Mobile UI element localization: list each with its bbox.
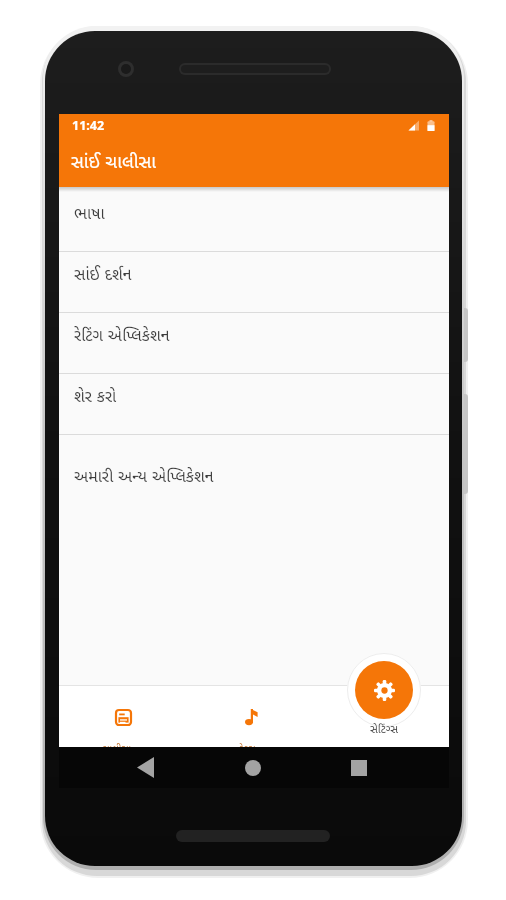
button[interactable]: ભાષા — [59, 187, 449, 252]
staticText: સાંઈ દર્શન — [74, 263, 132, 285]
staticText: ભાષા — [74, 202, 105, 224]
button[interactable] — [229, 693, 277, 741]
staticText: ટ્રેક્સ — [239, 741, 256, 755]
button[interactable] — [341, 755, 377, 780]
staticText: સાંઈ ચાલીસા — [71, 149, 157, 174]
staticText: અમારી અન્ય એપ્લિકેશન — [74, 465, 214, 487]
button[interactable]: અમારી અન્ય એપ્લિકેશન — [59, 435, 449, 496]
button[interactable]: સાંઈ દર્શન — [59, 252, 449, 313]
staticText: શેર કરો — [74, 385, 117, 407]
button[interactable] — [235, 755, 271, 780]
staticText: રેટિંગ એપ્લિકેશન — [74, 324, 170, 346]
button[interactable] — [99, 693, 147, 741]
button[interactable]: રેટિંગ એપ્લિકેશન — [59, 313, 449, 374]
staticText: ચાલીસા — [103, 741, 132, 755]
button[interactable] — [127, 755, 163, 780]
staticText: 11:42 — [72, 117, 105, 134]
staticText: સેટિંગ્સ — [370, 721, 399, 736]
button[interactable] — [355, 661, 413, 719]
button[interactable]: શેર કરો — [59, 374, 449, 435]
